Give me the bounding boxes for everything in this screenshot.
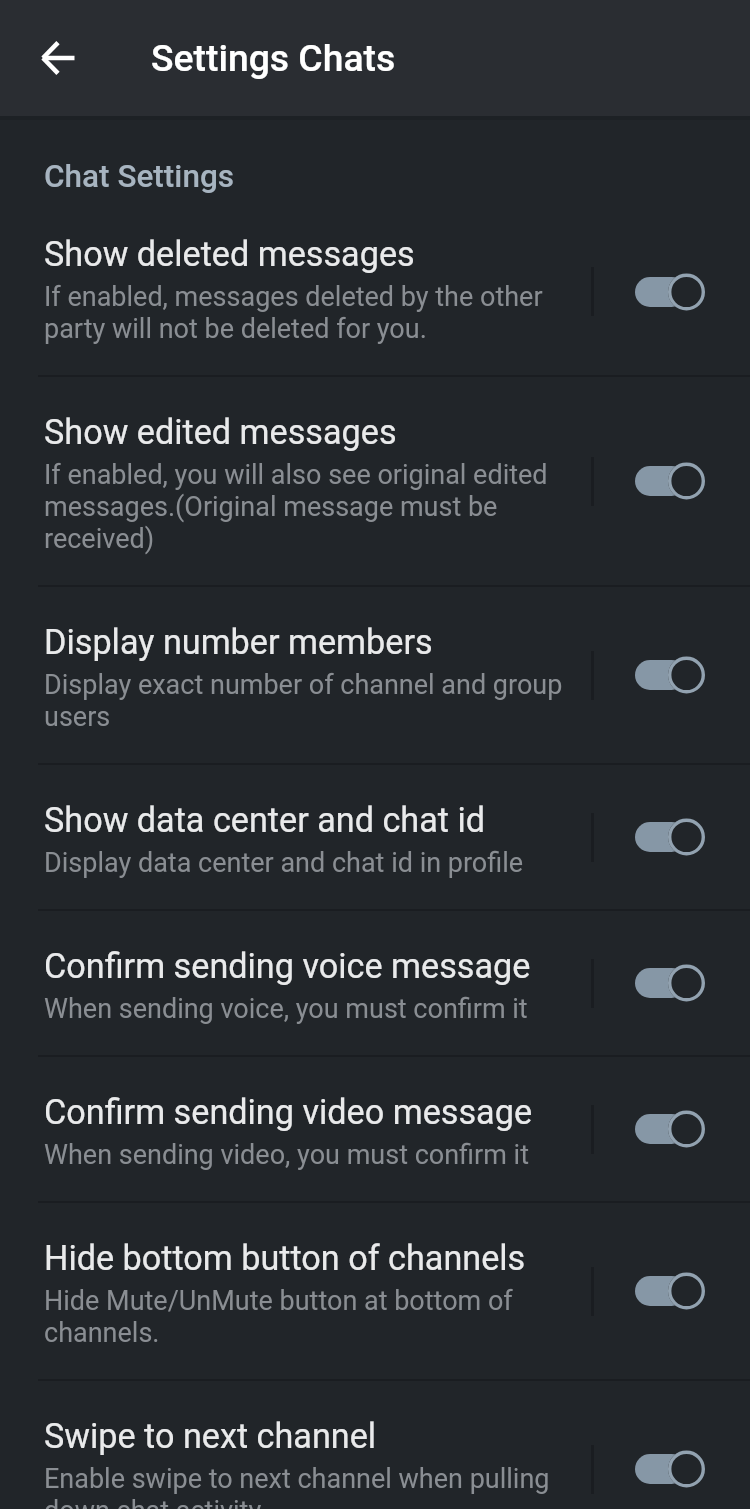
button[interactable]: Toggle Show data center and chat id bbox=[594, 800, 750, 874]
staticText: Display data center and chat id in profi… bbox=[44, 847, 564, 879]
staticText: Show deleted messages bbox=[44, 234, 415, 274]
staticText: Settings Chats bbox=[151, 36, 396, 80]
staticText: Chat Settings bbox=[44, 158, 235, 195]
staticText: Show edited messages bbox=[44, 412, 397, 452]
staticText: If enabled, messages deleted by the othe… bbox=[44, 281, 564, 345]
staticText: When sending video, you must confirm it bbox=[44, 1139, 564, 1171]
staticText: Confirm sending voice message bbox=[44, 946, 531, 986]
button[interactable]: Display number members bbox=[0, 587, 750, 763]
button[interactable]: Back bbox=[19, 19, 97, 97]
staticText: If enabled, you will also see original e… bbox=[44, 459, 564, 555]
button[interactable]: Toggle Confirm sending video message bbox=[594, 1092, 750, 1166]
staticText: Display exact number of channel and grou… bbox=[44, 669, 564, 733]
button[interactable]: Toggle Confirm sending voice message bbox=[594, 946, 750, 1020]
button[interactable]: Swipe to next channel bbox=[0, 1381, 750, 1509]
staticText: Confirm sending video message bbox=[44, 1092, 533, 1132]
button[interactable]: Hide bottom button of channels bbox=[0, 1203, 750, 1379]
staticText: Enable swipe to next channel when pullin… bbox=[44, 1463, 564, 1509]
button[interactable]: Toggle Hide bottom button of channels bbox=[594, 1254, 750, 1328]
staticText: Display number members bbox=[44, 622, 433, 662]
button[interactable]: Toggle Show deleted messages bbox=[594, 255, 750, 329]
staticText: Hide bottom button of channels bbox=[44, 1238, 526, 1278]
staticText: When sending voice, you must confirm it bbox=[44, 993, 564, 1025]
button[interactable]: Toggle Swipe to next channel bbox=[594, 1432, 750, 1506]
staticText: Show data center and chat id bbox=[44, 800, 486, 840]
button[interactable]: Show deleted messages bbox=[0, 208, 750, 375]
staticText: Hide Mute/UnMute button at bottom of cha… bbox=[44, 1285, 564, 1349]
button[interactable]: Show edited messages bbox=[0, 377, 750, 585]
button[interactable]: Show data center and chat id bbox=[0, 765, 750, 909]
button[interactable]: Toggle Display number members bbox=[594, 638, 750, 712]
button[interactable]: Confirm sending video message bbox=[0, 1057, 750, 1201]
button[interactable]: Confirm sending voice message bbox=[0, 911, 750, 1055]
staticText: Swipe to next channel bbox=[44, 1416, 377, 1456]
button[interactable]: Toggle Show edited messages bbox=[594, 444, 750, 518]
